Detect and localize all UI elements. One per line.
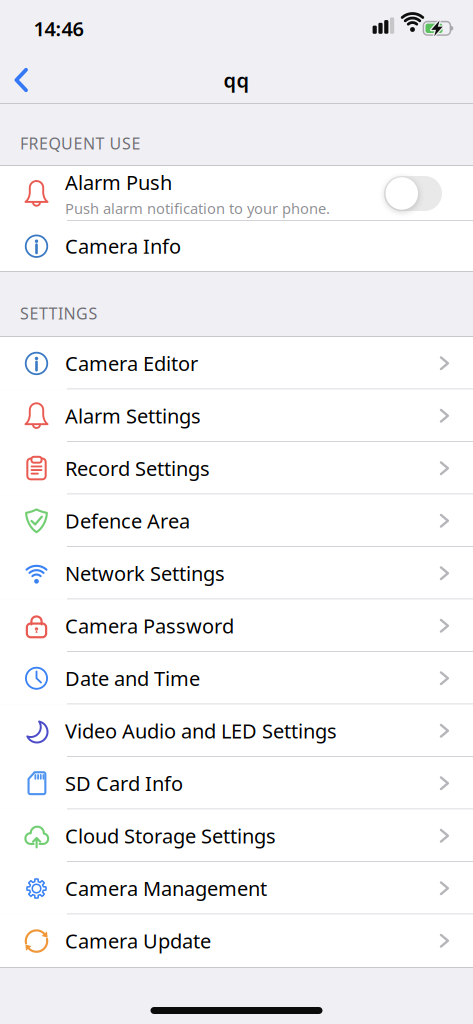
staticText: Video Audio and LED Settings [65,717,337,744]
button[interactable]: Record Settings [0,442,473,494]
button[interactable]: Camera Info [0,221,473,271]
staticText: Alarm Settings [65,402,201,429]
staticText: FREQUENT USE [20,133,140,154]
staticText: Camera Password [65,612,234,639]
staticText: Alarm Push [65,169,172,196]
staticText: Network Settings [65,560,225,587]
staticText: SD Card Info [65,770,183,797]
button[interactable]: Camera Update [0,914,473,967]
button[interactable]: SD Card Info [0,757,473,809]
button[interactable]: Camera Editor [0,337,473,389]
staticText: qq [223,67,249,93]
button[interactable]: Cloud Storage Settings [0,809,473,862]
staticText: Record Settings [65,455,210,482]
button[interactable]: Defence Area [0,494,473,547]
staticText: Camera Update [65,927,211,954]
staticText: Push alarm notification to your phone. [65,198,330,218]
staticText: Defence Area [65,507,190,534]
staticText: Cloud Storage Settings [65,822,276,849]
button[interactable]: Camera Management [0,862,473,914]
staticText: Camera Info [65,233,181,259]
button[interactable]: Camera Password [0,599,473,652]
button[interactable]: Date and Time [0,652,473,704]
staticText: Camera Management [65,875,267,902]
button[interactable]: Network Settings [0,547,473,599]
staticText: Date and Time [65,665,200,692]
staticText: Camera Editor [65,350,198,377]
button[interactable]: Back [14,68,29,92]
staticText: SETTINGS [20,303,97,324]
button[interactable]: Alarm Push [0,166,473,221]
staticText: 14:46 [33,15,83,42]
button[interactable]: Alarm Push toggle [384,176,442,211]
button[interactable]: Alarm Settings [0,389,473,442]
button[interactable]: Video Audio and LED Settings [0,704,473,757]
